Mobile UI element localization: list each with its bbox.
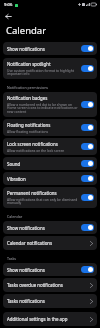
staticText: Allow floating notifications bbox=[7, 129, 49, 133]
button[interactable]: Additional settings in the app bbox=[3, 312, 97, 326]
button[interactable]: Tasks overdue notifications bbox=[3, 278, 97, 292]
button[interactable]: Show notifications bbox=[3, 221, 97, 234]
button[interactable]: Sound bbox=[3, 157, 97, 170]
staticText: Lock screen notifications bbox=[7, 141, 58, 147]
button[interactable]: Toggle bbox=[81, 175, 94, 182]
button[interactable]: Calendar notifications bbox=[3, 236, 97, 250]
staticText: Additional settings in the app bbox=[7, 316, 90, 322]
button[interactable]: Permanent notifications bbox=[3, 187, 97, 208]
button[interactable]: Lock screen notifications bbox=[3, 138, 97, 155]
button[interactable]: Show notifications bbox=[3, 42, 97, 55]
button[interactable]: Back bbox=[3, 11, 14, 22]
staticText: Calendar bbox=[6, 24, 47, 37]
staticText: Notification spotlight bbox=[7, 61, 51, 67]
button[interactable]: Show notifications bbox=[3, 263, 97, 276]
button[interactable]: Toggle bbox=[81, 143, 94, 150]
staticText: 9:06 bbox=[4, 2, 13, 8]
staticText: Vibration bbox=[7, 176, 26, 182]
staticText: Show notifications bbox=[7, 225, 45, 231]
button[interactable]: Floating notifications bbox=[3, 119, 97, 136]
staticText: Notification permissions bbox=[7, 85, 49, 90]
staticText: Use custom notification format to highli… bbox=[7, 68, 79, 76]
staticText: Floating notifications bbox=[7, 122, 51, 128]
button[interactable]: Toggle bbox=[81, 266, 94, 273]
staticText: Sound bbox=[7, 161, 21, 167]
button[interactable]: Toggle bbox=[81, 45, 94, 52]
staticText: Tasks overdue notifications bbox=[7, 282, 90, 288]
button[interactable]: Toggle bbox=[81, 65, 94, 72]
staticText: Calendar notifications bbox=[7, 240, 90, 246]
button[interactable]: Toggle bbox=[81, 124, 94, 131]
button[interactable]: Toggle bbox=[81, 160, 94, 167]
button[interactable]: Notification spotlight bbox=[3, 58, 97, 79]
button[interactable]: Toggle bbox=[81, 224, 94, 231]
button[interactable]: Notification badges bbox=[3, 92, 97, 117]
staticText: Show notifications bbox=[7, 46, 45, 52]
staticText: Notification badges bbox=[7, 95, 48, 101]
staticText: Allow notifications that can only be dis… bbox=[7, 197, 79, 205]
staticText: Calendar bbox=[7, 214, 23, 219]
button[interactable]: Toggle bbox=[81, 101, 94, 108]
button[interactable]: Toggle bbox=[81, 194, 94, 201]
staticText: Permanent notifications bbox=[7, 190, 57, 196]
staticText: Show notifications bbox=[7, 267, 45, 273]
button[interactable]: Vibration bbox=[3, 172, 97, 185]
staticText: Tasks notifications bbox=[7, 298, 90, 304]
staticText: Allow a numbered red dot to be shown on … bbox=[7, 102, 79, 114]
button[interactable]: Tasks notifications bbox=[3, 294, 97, 308]
staticText: Allow notifications on the lock screen bbox=[7, 148, 65, 152]
staticText: Tasks bbox=[7, 256, 17, 261]
